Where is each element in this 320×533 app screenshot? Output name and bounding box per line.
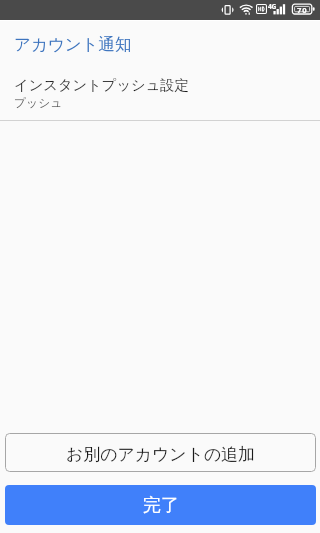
staticText: インスタントプッシュ設定: [14, 76, 189, 94]
staticText: 完了: [143, 494, 179, 517]
staticText: プッシュ: [14, 96, 63, 111]
button[interactable]: 完了: [5, 485, 316, 525]
staticText: アカウント通知: [14, 34, 132, 55]
staticText: 4G: [268, 2, 277, 11]
staticText: お別のアカウントの追加: [66, 444, 255, 465]
other: HD voice: [256, 4, 267, 14]
other: Vibrate, Wi-Fi, 4G signal, battery 70 pe…: [0, 0, 320, 20]
button[interactable]: お別のアカウントの追加: [5, 433, 316, 472]
staticText: 70: [297, 5, 308, 15]
button[interactable]: インスタントプッシュ設定: [0, 64, 320, 120]
